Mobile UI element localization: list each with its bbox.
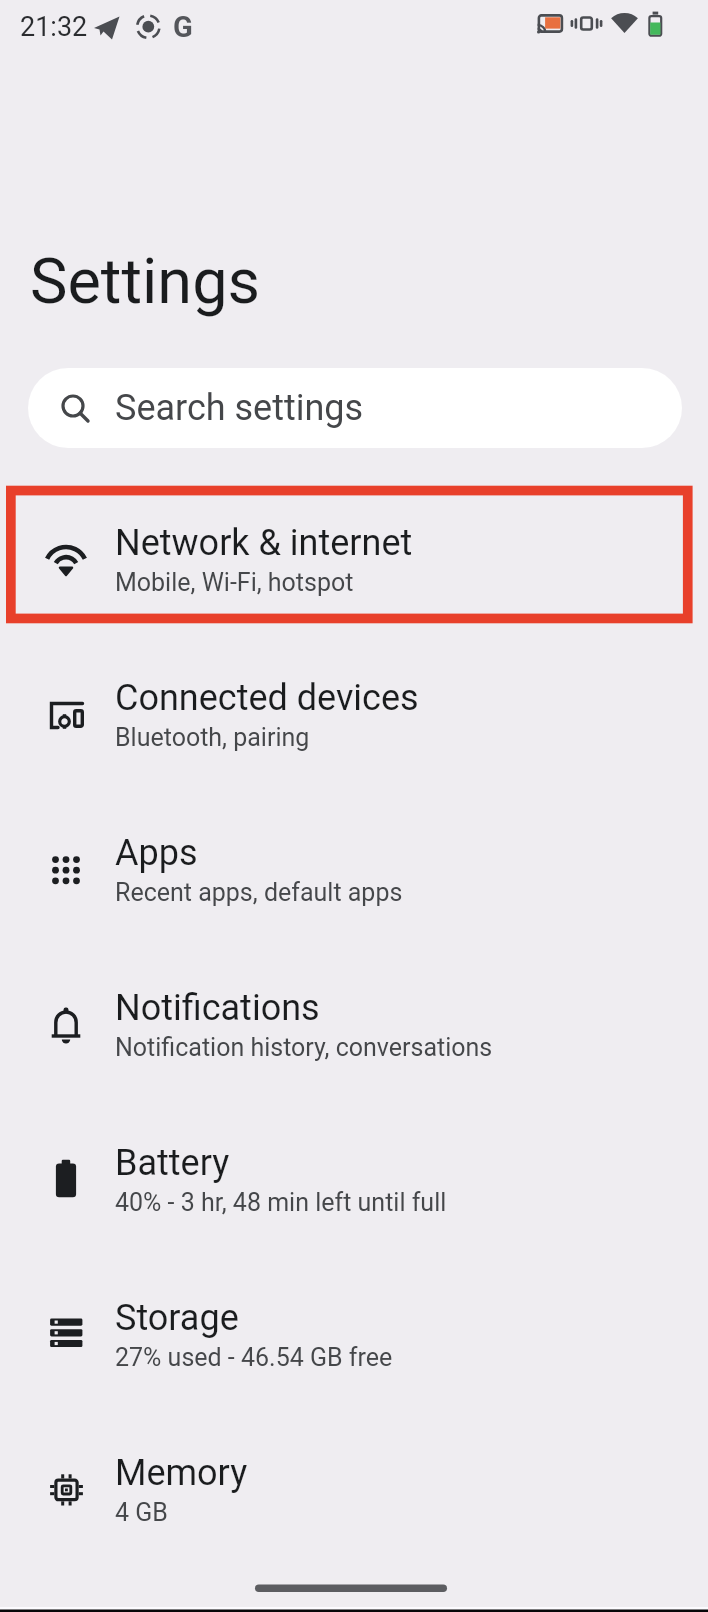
staticText: Search settings: [115, 387, 364, 429]
button[interactable]: Storage: [0, 1257, 708, 1412]
staticText: Network & internet: [115, 522, 413, 564]
staticText: 21:32: [20, 11, 88, 43]
button[interactable]: Connected devices: [0, 637, 708, 792]
staticText: 4 GB: [115, 1498, 168, 1527]
staticText: 40% - 3 hr, 48 min left until full: [115, 1188, 447, 1217]
button[interactable]: Apps: [0, 792, 708, 947]
staticText: Apps: [115, 832, 198, 874]
staticText: Settings: [30, 245, 261, 319]
button[interactable]: Network & internet: [0, 482, 708, 637]
button[interactable]: Notifications: [0, 947, 708, 1102]
staticText: Connected devices: [115, 677, 419, 719]
button[interactable]: Search settings: [28, 368, 682, 448]
button[interactable]: Memory: [0, 1412, 708, 1567]
staticText: Memory: [115, 1452, 248, 1494]
staticText: Notifications: [115, 987, 320, 1029]
button[interactable]: Battery: [0, 1102, 708, 1257]
staticText: Bluetooth, pairing: [115, 723, 310, 752]
staticText: Recent apps, default apps: [115, 878, 403, 907]
staticText: 27% used - 46.54 GB free: [115, 1343, 393, 1372]
staticText: Battery: [115, 1142, 230, 1184]
staticText: Notification history, conversations: [115, 1033, 493, 1062]
staticText: G: [173, 10, 193, 44]
staticText: Mobile, Wi-Fi, hotspot: [115, 568, 354, 597]
staticText: Storage: [115, 1297, 239, 1339]
